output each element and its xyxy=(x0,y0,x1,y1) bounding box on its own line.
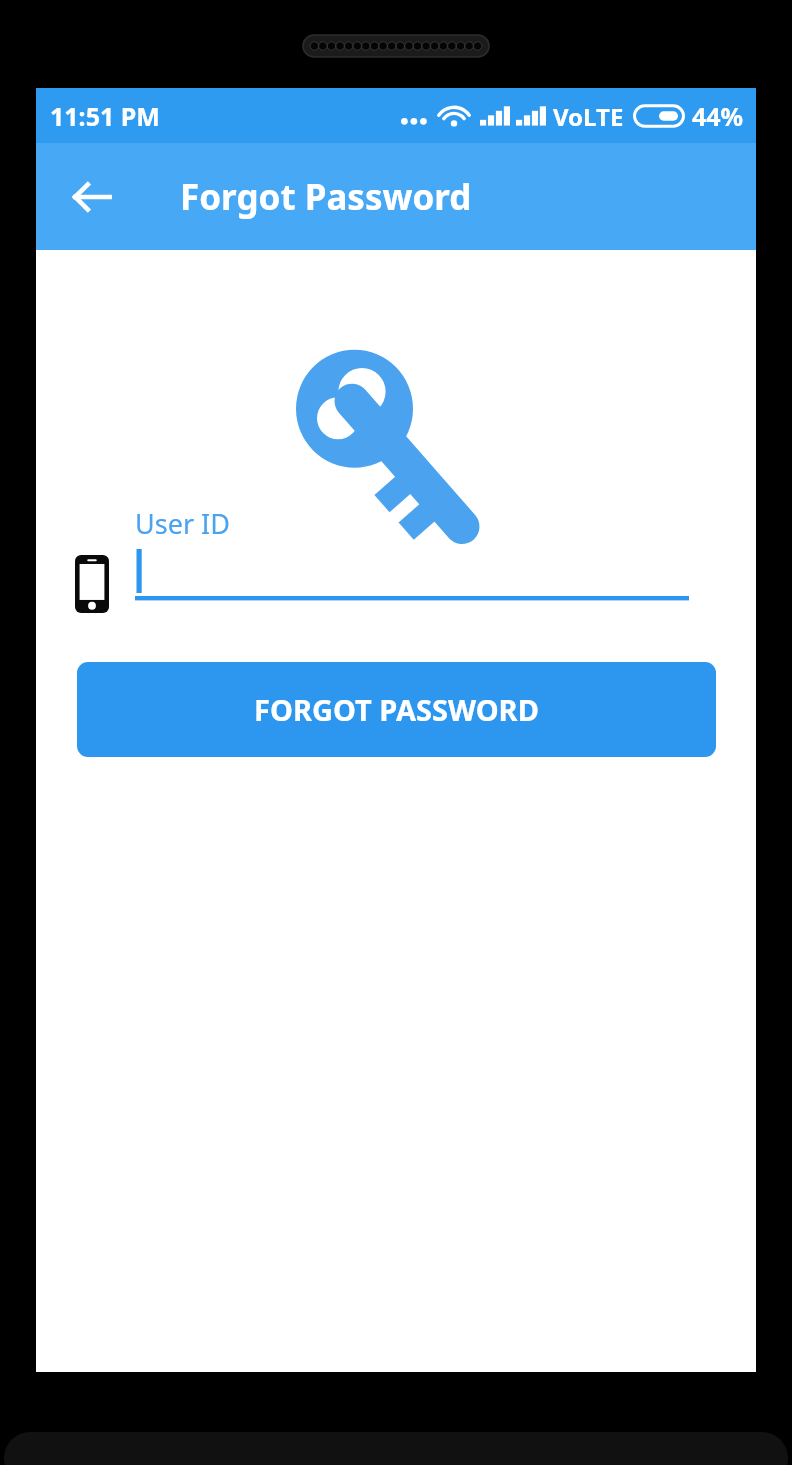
staticText: User ID xyxy=(135,505,230,542)
staticText: VoLTE xyxy=(553,100,624,133)
button[interactable]: FORGOT PASSWORD xyxy=(77,662,716,757)
staticText: 11:51 PM xyxy=(50,99,160,133)
staticText: Forgot Password xyxy=(180,173,472,221)
staticText: 44% xyxy=(692,99,744,133)
staticText: FORGOT PASSWORD xyxy=(254,690,539,729)
button[interactable]: Back xyxy=(58,163,126,231)
button[interactable]: User ID xyxy=(135,505,689,627)
